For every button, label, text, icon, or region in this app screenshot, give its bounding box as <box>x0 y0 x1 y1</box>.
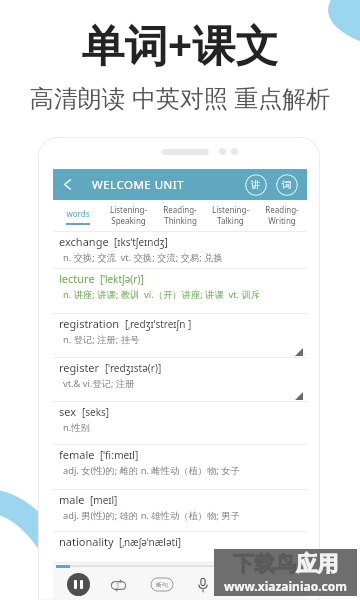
staticText: [ˌredʒɪˈstreɪʃn ] <box>125 317 192 331</box>
staticText: vt.& vi.登记; 注册 <box>63 377 135 390</box>
button[interactable]: Repeat one <box>107 574 129 596</box>
button[interactable]: 词 <box>276 174 298 196</box>
button[interactable]: Pause <box>67 573 90 596</box>
staticText: exchange <box>59 234 109 249</box>
staticText: n.性别 <box>63 421 90 434</box>
staticText: 断句 <box>156 581 168 589</box>
staticText: WELCOME UNIT <box>92 177 185 193</box>
button[interactable]: male <box>53 490 307 531</box>
button[interactable]: words <box>53 200 103 232</box>
button[interactable]: sex <box>53 402 307 444</box>
staticText: Listening- <box>212 204 249 215</box>
staticText: lecture <box>59 271 95 286</box>
staticText: nationality <box>59 534 114 549</box>
staticText: register <box>59 360 100 375</box>
staticText: n. 讲座; 讲课; 教训 vi.（开）讲座; 讲课 vt. 训斥 <box>63 288 261 301</box>
staticText: 1 <box>116 581 120 590</box>
staticText: [ɪksˈtʃeɪndʒ] <box>114 235 168 249</box>
staticText: female <box>59 447 95 462</box>
staticText: [seks] <box>82 405 110 419</box>
button[interactable]: Microphone <box>192 574 214 596</box>
staticText: Thinking <box>164 215 197 226</box>
staticText: Reading- <box>265 204 299 215</box>
staticText: registration <box>59 316 120 331</box>
button[interactable]: lecture <box>53 269 307 313</box>
staticText: 词 <box>282 179 292 191</box>
button[interactable]: registration <box>53 314 307 357</box>
button[interactable]: female <box>53 445 307 489</box>
staticText: Writing <box>268 215 296 226</box>
staticText: male <box>59 492 85 507</box>
staticText: [ˈredʒɪstə(r)] <box>105 361 162 375</box>
button[interactable]: Back <box>53 169 81 200</box>
staticText: words <box>66 208 90 219</box>
staticText: [ˈfiːmeɪl] <box>100 448 139 462</box>
button[interactable]: exchange <box>53 232 307 268</box>
staticText: n. 交换; 交流 vt. 交换; 交流; 交易; 兑换 <box>63 251 223 264</box>
button[interactable]: Segment <box>151 578 173 591</box>
button[interactable]: Listening- <box>205 200 256 232</box>
staticText: [ˈlektʃə(r)] <box>100 272 144 286</box>
button[interactable]: Listening- <box>103 200 154 232</box>
staticText: adj. 男(性)的; 雄的 n. 雄性动（植）物; 男子 <box>63 509 240 522</box>
staticText: 下载鸟 <box>233 551 296 577</box>
button[interactable]: Reading- <box>256 200 307 232</box>
staticText: sex <box>59 404 77 419</box>
staticText: Speaking <box>111 215 146 226</box>
staticText: [ˌnæʃəˈnæləti] <box>119 535 182 549</box>
button[interactable]: 讲 <box>245 174 267 196</box>
staticText: 高清朗读 中英对照 重点解析 <box>0 81 360 114</box>
staticText: 应用 <box>296 551 338 577</box>
staticText: n. 登记; 注册; 挂号 <box>63 333 140 346</box>
staticText: [meɪl] <box>90 493 118 507</box>
staticText: Listening- <box>110 204 147 215</box>
staticText: 讲 <box>251 179 261 191</box>
button[interactable]: Reading- <box>154 200 205 232</box>
staticText: adj. 女(性)的; 雌的 n. 雌性动（植）物; 女子 <box>63 464 240 477</box>
staticText: Reading- <box>163 204 197 215</box>
staticText: www.xiazainiao.com <box>224 578 347 594</box>
staticText: 单词+课文 <box>0 15 360 74</box>
staticText: Talking <box>217 215 244 226</box>
button[interactable]: register <box>53 358 307 401</box>
button[interactable]: nationality <box>53 532 307 562</box>
